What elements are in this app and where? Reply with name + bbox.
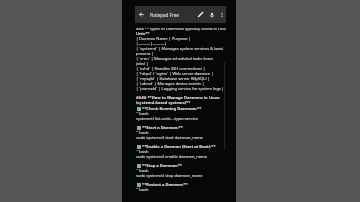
staticText: jobs) | — [136, 61, 149, 66]
staticText: ```bash — [136, 187, 149, 192]
staticText: |———|———| — [136, 41, 167, 46]
staticText: sudo systemctl enable daemon_name — [136, 154, 207, 159]
staticText: sudo systemctl start daemon_name — [136, 135, 203, 140]
staticText: ```bash — [136, 111, 149, 116]
staticText: | `cron` | Manages scheduled tasks (cron — [136, 56, 213, 61]
button[interactable]: Voice input — [206, 9, 217, 20]
staticText: #### **How to Manage Daemons in Linux — [136, 95, 220, 100]
button[interactable]: Edit — [195, 9, 206, 20]
staticText: **Enable a Daemon (Start at Boot):** — [142, 144, 216, 149]
staticText: **Check Running Daemons:** — [142, 106, 202, 111]
staticText: Unix** — [136, 31, 150, 36]
staticText: **Stop a Daemon:** — [142, 163, 182, 168]
staticText: **Restart a Daemon:** — [142, 182, 188, 187]
staticText: ```bash — [136, 149, 149, 154]
staticText: | `httpd` / `nginx` | Web server daemon … — [136, 71, 214, 76]
staticText: | `sshd` | Handles SSH connections | — [136, 66, 206, 71]
staticText: ### **Types of Daemons typically found i… — [136, 28, 226, 31]
staticText: Notepad Free — [150, 12, 179, 18]
button[interactable]: More options — [217, 10, 226, 19]
button[interactable]: Back — [135, 8, 148, 21]
staticText: **Start a Daemon:** — [142, 125, 183, 130]
staticText: ```bash — [136, 168, 149, 173]
staticText: systemctl list-units --type=service — [136, 116, 198, 121]
staticText: | `udevd` | Manages device events | — [136, 81, 205, 86]
staticText: | `journald` | Logging service for syste… — [136, 86, 225, 91]
staticText: sudo systemctl stop daemon_name — [136, 173, 203, 178]
staticText: (systemd-based systems)** — [136, 100, 191, 105]
staticText: | Daemon Name | Purpose | — [136, 36, 191, 41]
staticText: process | — [136, 51, 154, 56]
staticText: ```bash — [136, 130, 149, 135]
staticText: | `systemd` | Manages system services & … — [136, 46, 223, 51]
staticText: | `mysqld` | Database server (MySQL) | — [136, 76, 210, 81]
